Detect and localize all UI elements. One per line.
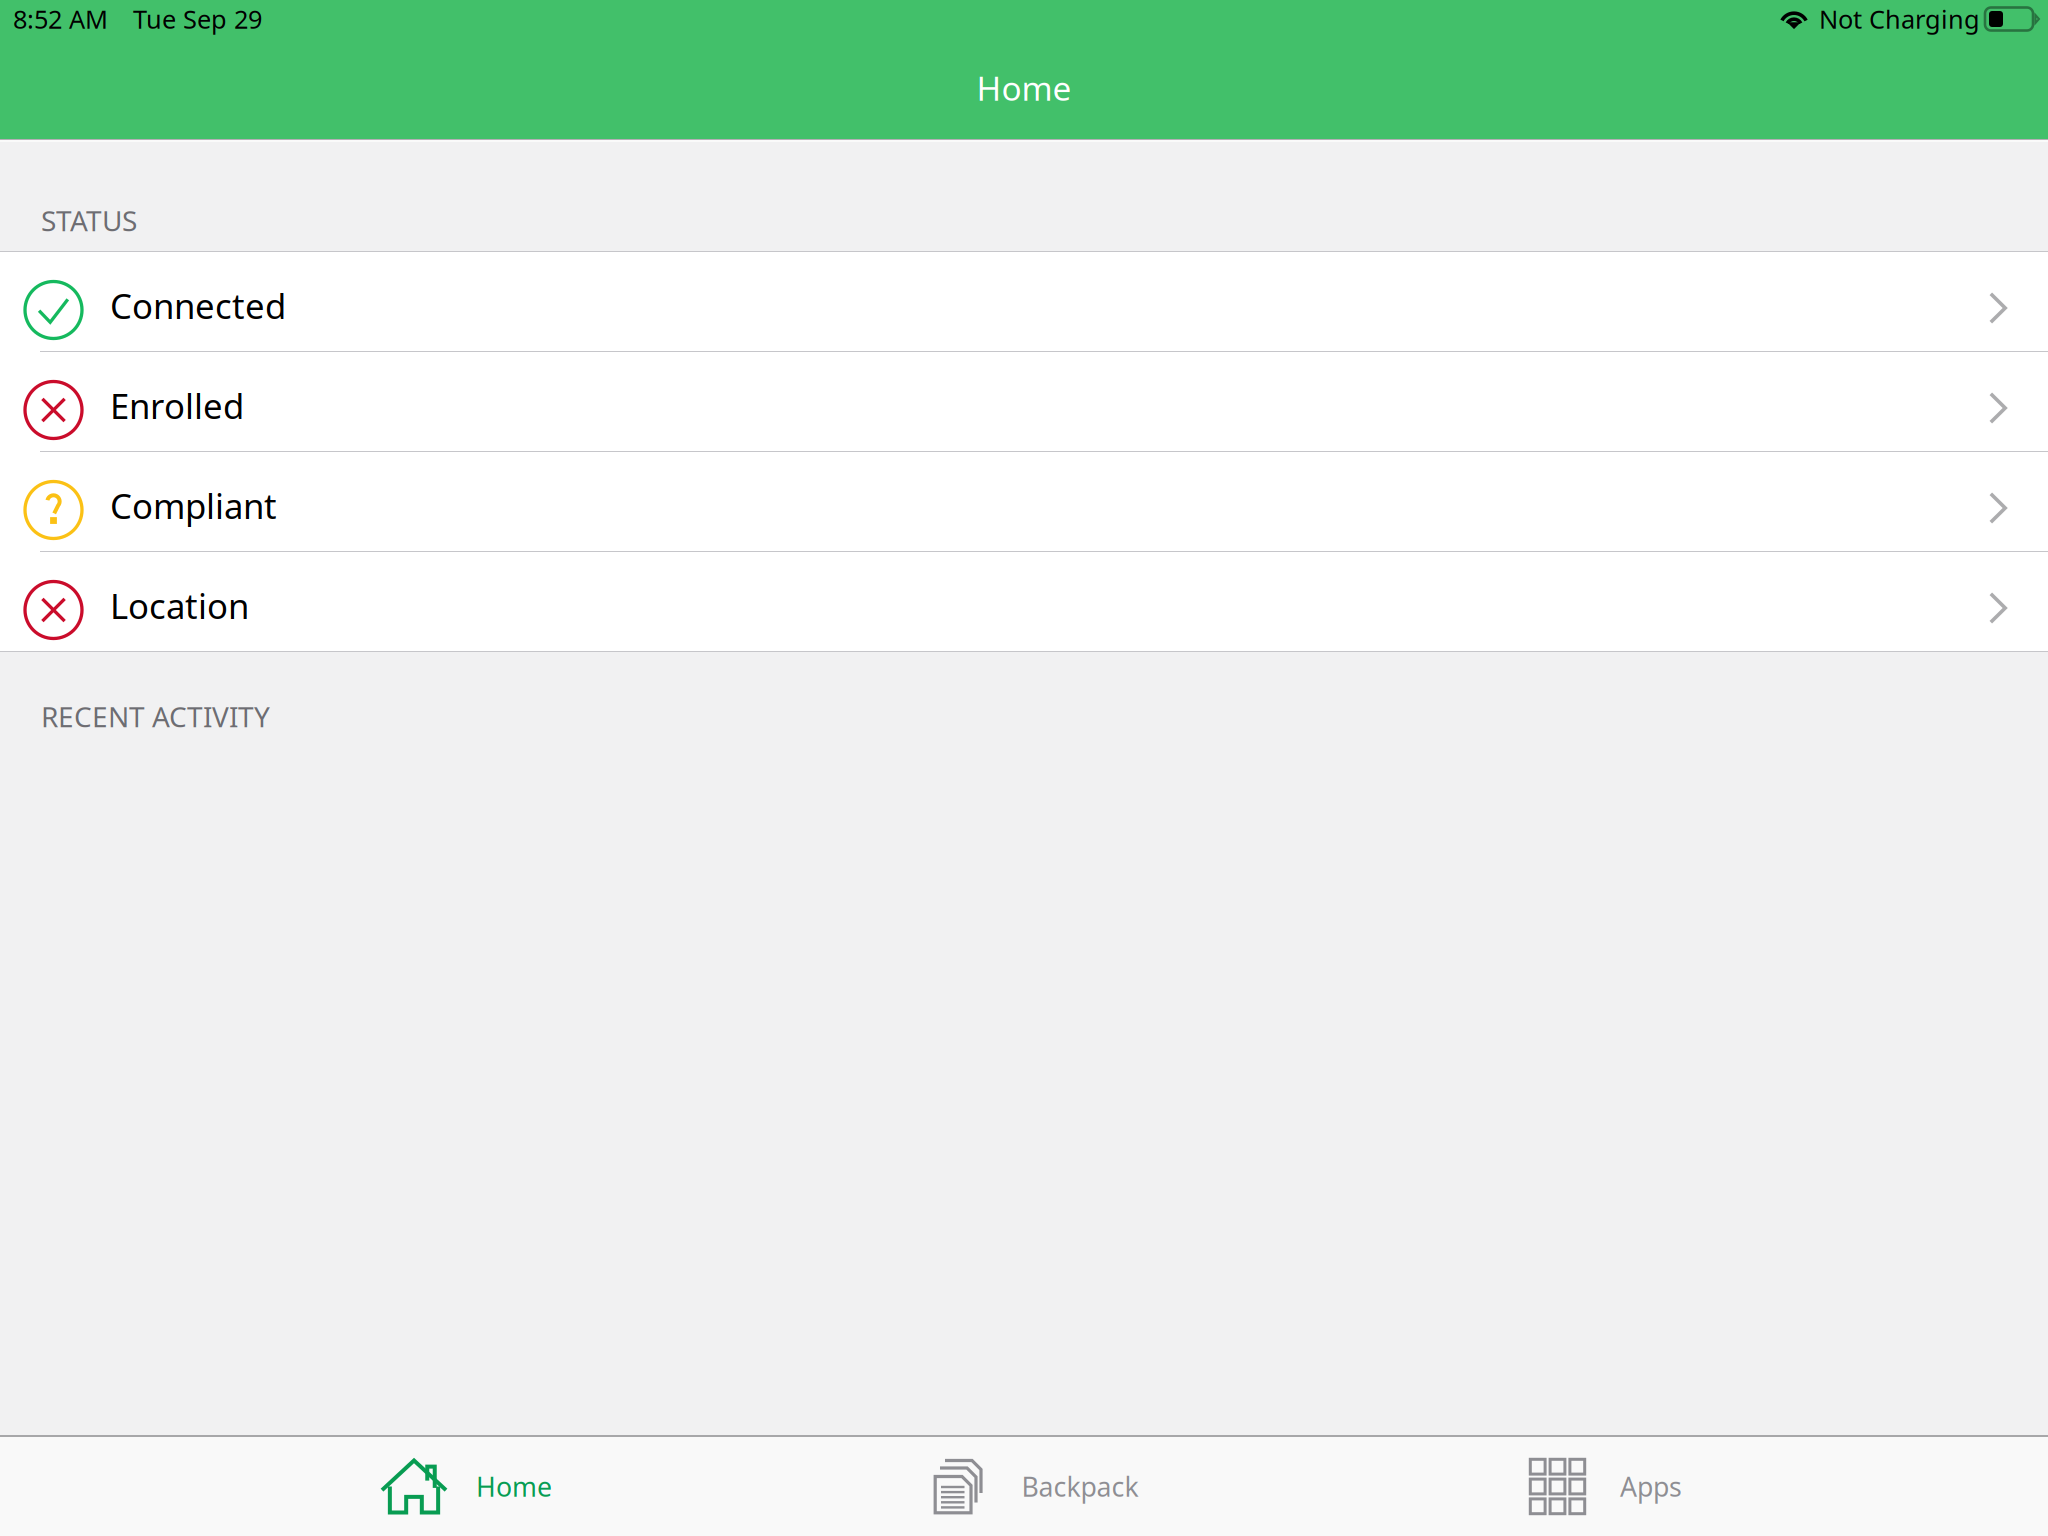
staticText: STATUS	[41, 202, 137, 239]
staticText: Home	[476, 1469, 552, 1504]
staticText: Compliant	[110, 482, 277, 528]
staticText: Not Charging	[1819, 2, 1980, 36]
button[interactable]: Apps	[1321, 1437, 1891, 1535]
staticText: RECENT ACTIVITY	[41, 698, 270, 735]
button[interactable]: Connected	[0, 252, 2048, 351]
button[interactable]: Enrolled	[0, 352, 2048, 451]
button[interactable]: Backpack	[751, 1437, 1321, 1535]
staticText: Backpack	[1021, 1469, 1138, 1504]
staticText: Tue Sep 29	[133, 2, 262, 36]
button[interactable]: Home	[181, 1437, 751, 1535]
button[interactable]: Compliant	[0, 452, 2048, 551]
staticText: 8:52 AM	[13, 2, 108, 36]
staticText: Connected	[110, 282, 286, 328]
staticText: Apps	[1620, 1469, 1682, 1504]
button[interactable]: Location	[0, 552, 2048, 651]
staticText: Location	[110, 582, 249, 628]
staticText: Home	[976, 66, 1071, 110]
staticText: Enrolled	[110, 382, 244, 428]
